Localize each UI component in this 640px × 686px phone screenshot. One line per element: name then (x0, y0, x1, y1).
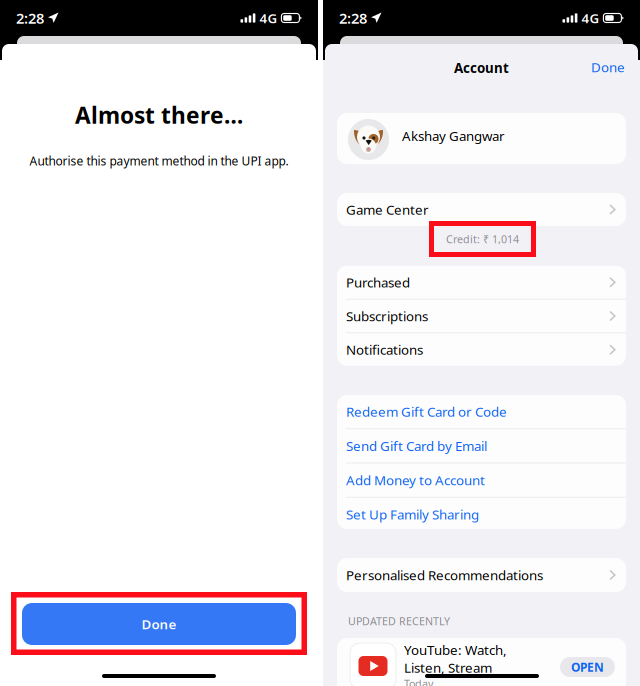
staticText: Subscriptions (346, 307, 428, 325)
staticText: Today (404, 676, 433, 686)
staticText: Redeem Gift Card or Code (346, 403, 507, 420)
staticText: Almost there… (75, 100, 243, 130)
staticText: UPDATED RECENTLY (348, 614, 450, 628)
staticText: Done (591, 58, 625, 76)
staticText: Credit: ₹ 1,014 (446, 232, 519, 246)
staticText: Account (454, 59, 509, 77)
button[interactable]: Add Money to Account (337, 463, 626, 497)
button[interactable]: OPEN (560, 657, 615, 677)
staticText: Purchased (346, 273, 410, 291)
staticText: Game Center (346, 201, 429, 218)
staticText: YouTube: Watch, (404, 641, 507, 659)
button[interactable]: Set Up Family Sharing (337, 498, 626, 531)
staticText: Listen, Stream (404, 659, 492, 676)
staticText: Send Gift Card by Email (346, 437, 487, 455)
staticText: OPEN (571, 659, 604, 675)
button[interactable]: Purchased (337, 266, 626, 299)
staticText: Personalised Recommendations (346, 566, 543, 584)
button[interactable]: Game Center (337, 193, 626, 226)
staticText: 4G (259, 9, 277, 27)
button[interactable]: Akshay Gangwar (337, 113, 626, 164)
staticText: Add Money to Account (346, 471, 485, 489)
staticText: 4G (581, 9, 599, 27)
button[interactable]: Done (22, 603, 296, 645)
button[interactable]: Redeem Gift Card or Code (337, 395, 626, 428)
button[interactable]: Send Gift Card by Email (337, 429, 626, 463)
button[interactable]: Notifications (337, 333, 626, 366)
staticText: Authorise this payment method in the UPI… (29, 153, 288, 169)
button[interactable]: Done (323, 60, 625, 74)
staticText: 2:28 (339, 8, 367, 28)
staticText: 2:28 (16, 8, 44, 28)
button[interactable]: Personalised Recommendations (337, 558, 626, 592)
button[interactable]: Subscriptions (337, 299, 626, 332)
staticText: Notifications (346, 341, 423, 358)
staticText: Akshay Gangwar (402, 127, 505, 145)
staticText: Done (141, 615, 176, 633)
staticText: Set Up Family Sharing (346, 505, 479, 523)
